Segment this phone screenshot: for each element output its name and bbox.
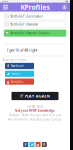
staticText: g xyxy=(7,79,10,84)
staticText: g xyxy=(37,142,40,147)
staticText: 12:04 xyxy=(35,0,39,2)
button[interactable]: Menu xyxy=(0,3,11,12)
staticText: Test your KPOP knowledge xyxy=(15,109,55,112)
staticText: I got 16 of 48 right xyxy=(7,47,37,53)
button[interactable]: Share xyxy=(42,142,47,147)
button[interactable]: g xyxy=(5,78,34,85)
staticText: PLAY AGAIN xyxy=(25,93,50,99)
button[interactable]: Share xyxy=(29,142,34,147)
staticText: Strictly Girl's Generation xyxy=(10,15,43,18)
button[interactable]: PLAY AGAIN xyxy=(11,92,58,100)
staticText: Strictly Girl's Favorite Cookies xyxy=(10,31,49,35)
button[interactable]: f xyxy=(5,63,34,69)
staticText: Discover. Share this quiz and find out xyxy=(9,113,61,117)
staticText: Twitter xyxy=(11,72,20,75)
staticText: Google+ xyxy=(11,80,24,83)
button[interactable]: Strictly Girl's Bangtan xyxy=(4,21,66,28)
staticText: Facebook xyxy=(11,64,23,68)
button[interactable]: Strictly Girl's Favorite Cookies xyxy=(4,30,66,36)
staticText: Strictly Girl's Bangtan xyxy=(10,23,38,26)
button[interactable]: Twitter xyxy=(5,71,34,77)
button[interactable]: Share xyxy=(23,142,28,147)
staticText: who knows the most about your group. xyxy=(7,118,62,121)
staticText: f xyxy=(25,142,27,147)
staticText: Create Quiz xyxy=(27,105,43,108)
staticText: f xyxy=(7,63,9,69)
staticText: Share your results xyxy=(2,58,26,62)
button[interactable]: Account xyxy=(59,3,70,12)
button[interactable]: Strictly Girl's Generation xyxy=(4,13,66,20)
button[interactable]: Share xyxy=(36,142,41,147)
staticText: f xyxy=(43,142,45,147)
staticText: KProfiles xyxy=(20,3,49,12)
